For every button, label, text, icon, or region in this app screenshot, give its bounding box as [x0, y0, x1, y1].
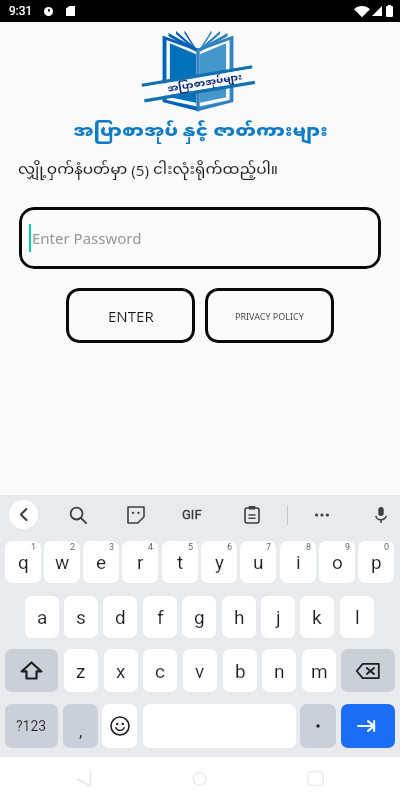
- staticText: q: [18, 551, 29, 573]
- staticText: y: [215, 551, 224, 573]
- staticText: အပြာစာအုပ် နှင့် ဇာတ်ကားများ: [73, 119, 328, 144]
- staticText: ?123: [16, 718, 47, 734]
- button[interactable]: u: [240, 541, 276, 583]
- staticText: x: [116, 660, 126, 682]
- staticText: s: [76, 606, 86, 628]
- staticText: 5: [188, 542, 194, 553]
- button[interactable]: y: [201, 541, 237, 583]
- button[interactable]: Clipboard: [237, 500, 267, 530]
- staticText: PRIVACY POLICY: [235, 310, 304, 322]
- button[interactable]: h: [222, 596, 256, 638]
- button[interactable]: Back: [9, 500, 38, 529]
- staticText: u: [253, 551, 264, 573]
- button[interactable]: Stickers: [121, 500, 151, 530]
- button[interactable]: Shift: [5, 649, 58, 692]
- button[interactable]: m: [302, 649, 336, 692]
- button[interactable]: ENTER: [66, 288, 195, 343]
- button[interactable]: Emoji: [102, 704, 137, 748]
- button[interactable]: p: [358, 541, 394, 583]
- staticText: 9:31: [9, 4, 33, 18]
- staticText: f: [157, 606, 164, 628]
- button[interactable]: Enter: [341, 704, 395, 748]
- staticText: b: [235, 660, 246, 682]
- button[interactable]: n: [262, 649, 296, 692]
- staticText: d: [115, 606, 126, 628]
- staticText: 3: [109, 542, 115, 553]
- staticText: n: [274, 660, 285, 682]
- button[interactable]: Back: [62, 765, 102, 793]
- button[interactable]: More: [307, 500, 337, 530]
- button[interactable]: ,: [63, 704, 98, 748]
- staticText: 2: [70, 542, 76, 553]
- button[interactable]: Search: [63, 500, 93, 530]
- staticText: a: [37, 606, 48, 628]
- button[interactable]: k: [300, 596, 334, 638]
- button[interactable]: z: [64, 649, 98, 692]
- staticText: m: [311, 660, 328, 682]
- button[interactable]: r: [122, 541, 158, 583]
- button[interactable]: i: [280, 541, 316, 583]
- staticText: o: [332, 551, 343, 573]
- button[interactable]: Enter Password: [19, 207, 381, 269]
- staticText: v: [195, 660, 205, 682]
- staticText: 7: [266, 542, 272, 553]
- staticText: t: [177, 551, 184, 573]
- button[interactable]: c: [143, 649, 177, 692]
- button[interactable]: t: [162, 541, 198, 583]
- staticText: i: [296, 551, 301, 573]
- staticText: 1: [31, 542, 37, 553]
- staticText: GIF: [182, 507, 202, 522]
- staticText: 0: [384, 542, 390, 553]
- button[interactable]: w: [44, 541, 80, 583]
- button[interactable]: l: [340, 596, 374, 638]
- staticText: ENTER: [108, 306, 154, 326]
- button[interactable]: [300, 704, 336, 748]
- staticText: z: [76, 660, 86, 682]
- staticText: h: [234, 606, 245, 628]
- staticText: လျှို့ဝှက်နံပတ်မှာ (5) ငါးလုံးရိုက်ထည့်ပ…: [18, 160, 279, 181]
- button[interactable]: Backspace: [341, 649, 395, 692]
- button[interactable]: s: [64, 596, 98, 638]
- staticText: 8: [306, 542, 312, 553]
- button[interactable]: j: [261, 596, 295, 638]
- button[interactable]: e: [83, 541, 119, 583]
- button[interactable]: b: [223, 649, 257, 692]
- staticText: r: [137, 551, 144, 573]
- button[interactable]: ?123: [5, 704, 58, 748]
- staticText: အပြာစာအုပ်များ: [166, 70, 244, 96]
- staticText: p: [371, 551, 382, 573]
- button[interactable]: f: [143, 596, 177, 638]
- button[interactable]: a: [25, 596, 59, 638]
- staticText: ,: [79, 721, 83, 741]
- button[interactable]: PRIVACY POLICY: [205, 288, 334, 343]
- staticText: g: [194, 606, 205, 628]
- staticText: Enter Password: [32, 228, 142, 248]
- button[interactable]: x: [104, 649, 138, 692]
- button[interactable]: v: [183, 649, 217, 692]
- staticText: e: [96, 551, 107, 573]
- button[interactable]: g: [182, 596, 216, 638]
- button[interactable]: d: [103, 596, 137, 638]
- staticText: w: [55, 551, 70, 573]
- staticText: c: [155, 660, 165, 682]
- button[interactable]: Home: [180, 765, 220, 793]
- staticText: 6: [227, 542, 233, 553]
- staticText: 4: [148, 542, 154, 553]
- button[interactable]: o: [319, 541, 355, 583]
- staticText: k: [312, 606, 322, 628]
- staticText: l: [355, 606, 360, 628]
- staticText: j: [276, 606, 281, 628]
- button[interactable]: q: [5, 541, 41, 583]
- button[interactable]: Voice input: [366, 500, 396, 530]
- button[interactable]: Recents: [296, 765, 336, 793]
- staticText: 9: [345, 542, 351, 553]
